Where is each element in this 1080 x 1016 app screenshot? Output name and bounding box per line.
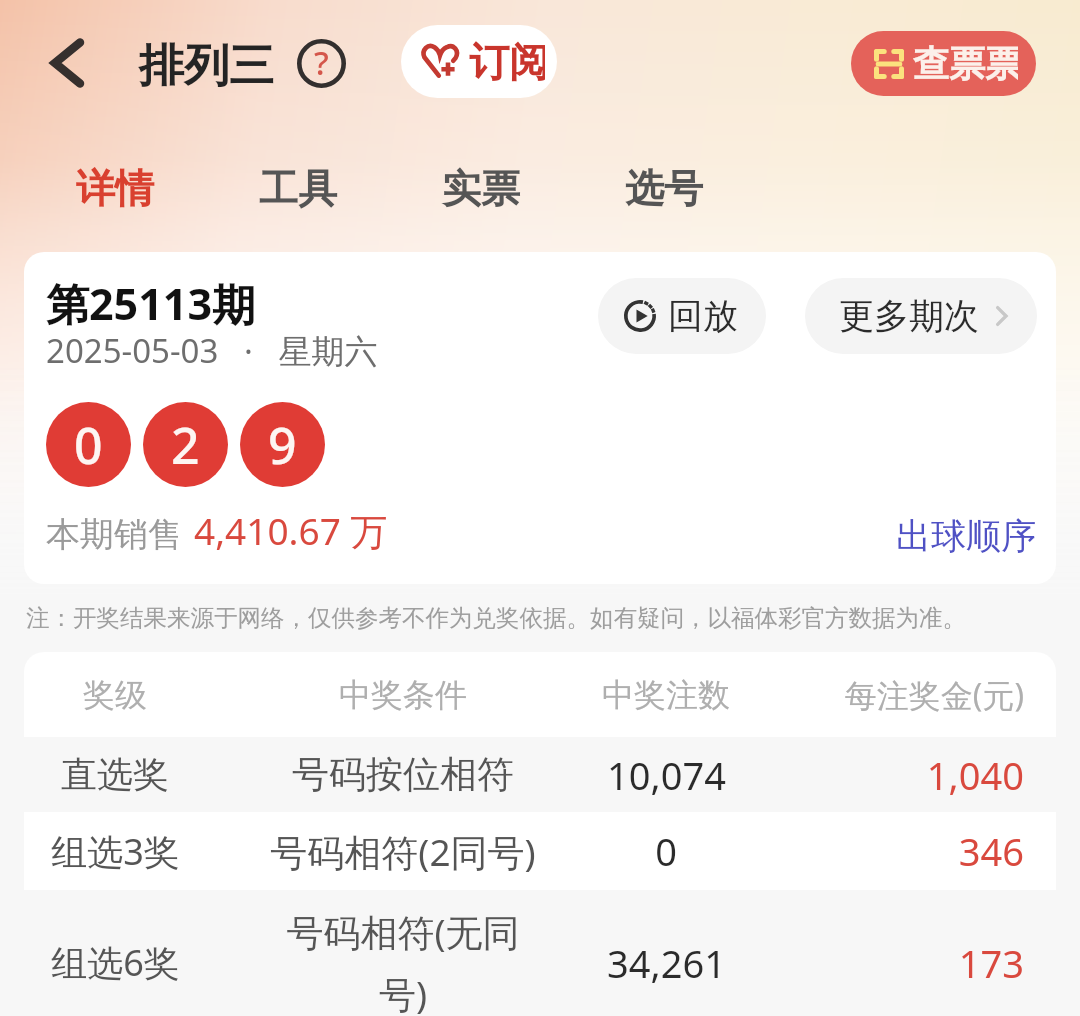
staticText: 173 (958, 937, 1024, 989)
staticText: 2025-05-03 · 星期六 (46, 328, 378, 373)
staticText: 出球顺序 (896, 514, 1036, 558)
staticText: 号码相符(无同 号) (286, 906, 520, 1016)
button[interactable]: 查票票 (851, 31, 1036, 96)
staticText: 本期销售 (46, 513, 182, 556)
staticText: ? (314, 40, 329, 85)
staticText: 工具 (259, 164, 337, 213)
staticText: 号码相符(2同号) (270, 826, 536, 877)
staticText: 订阅 (469, 37, 545, 87)
button[interactable]: 工具 (259, 164, 337, 213)
staticText: 10,074 (607, 749, 726, 801)
button[interactable]: 实票 (442, 164, 520, 213)
staticText: 详情 (76, 164, 154, 213)
button[interactable]: 选号 (625, 164, 703, 213)
staticText: 4,410.67 万 (194, 505, 388, 556)
button[interactable]: Back (34, 30, 100, 96)
button[interactable]: 更多期次 (805, 278, 1037, 354)
button[interactable]: 详情 (76, 164, 154, 213)
staticText: 2 (171, 411, 200, 479)
staticText: 0 (74, 411, 103, 479)
staticText: 更多期次 (839, 294, 979, 338)
staticText: 每注奖金(元) (844, 673, 1024, 717)
staticText: 第25113期 (46, 274, 255, 333)
staticText: 号码按位相符 (292, 751, 514, 798)
button[interactable]: 回放 (598, 278, 766, 354)
button[interactable]: 订阅 (401, 25, 557, 98)
staticText: 中奖注数 (602, 675, 730, 715)
staticText: 346 (958, 825, 1024, 877)
staticText: 34,261 (607, 937, 726, 989)
staticText: 奖级 (83, 675, 147, 715)
staticText: 1,040 (926, 749, 1024, 801)
staticText: 组选6奖 (51, 938, 180, 987)
button[interactable]: Help (297, 39, 346, 88)
staticText: 查票票 (913, 41, 1018, 86)
staticText: 选号 (625, 164, 703, 213)
staticText: 0 (655, 825, 677, 877)
button[interactable]: 出球顺序 (896, 514, 1036, 558)
staticText: 回放 (668, 294, 738, 338)
staticText: 排列三 (139, 38, 274, 95)
button[interactable]: 组选6奖 (24, 890, 1056, 1016)
staticText: 中奖条件 (339, 675, 467, 715)
staticText: 注：开奖结果来源于网络，仅供参考不作为兑奖依据。如有疑问，以福体彩官方数据为准。 (26, 603, 966, 633)
staticText: 实票 (442, 164, 520, 213)
staticText: 组选3奖 (51, 827, 180, 876)
staticText: 直选奖 (61, 752, 169, 797)
staticText: 9 (268, 411, 297, 479)
button[interactable]: 组选3奖 (24, 812, 1056, 890)
button[interactable]: 直选奖 (24, 737, 1056, 812)
